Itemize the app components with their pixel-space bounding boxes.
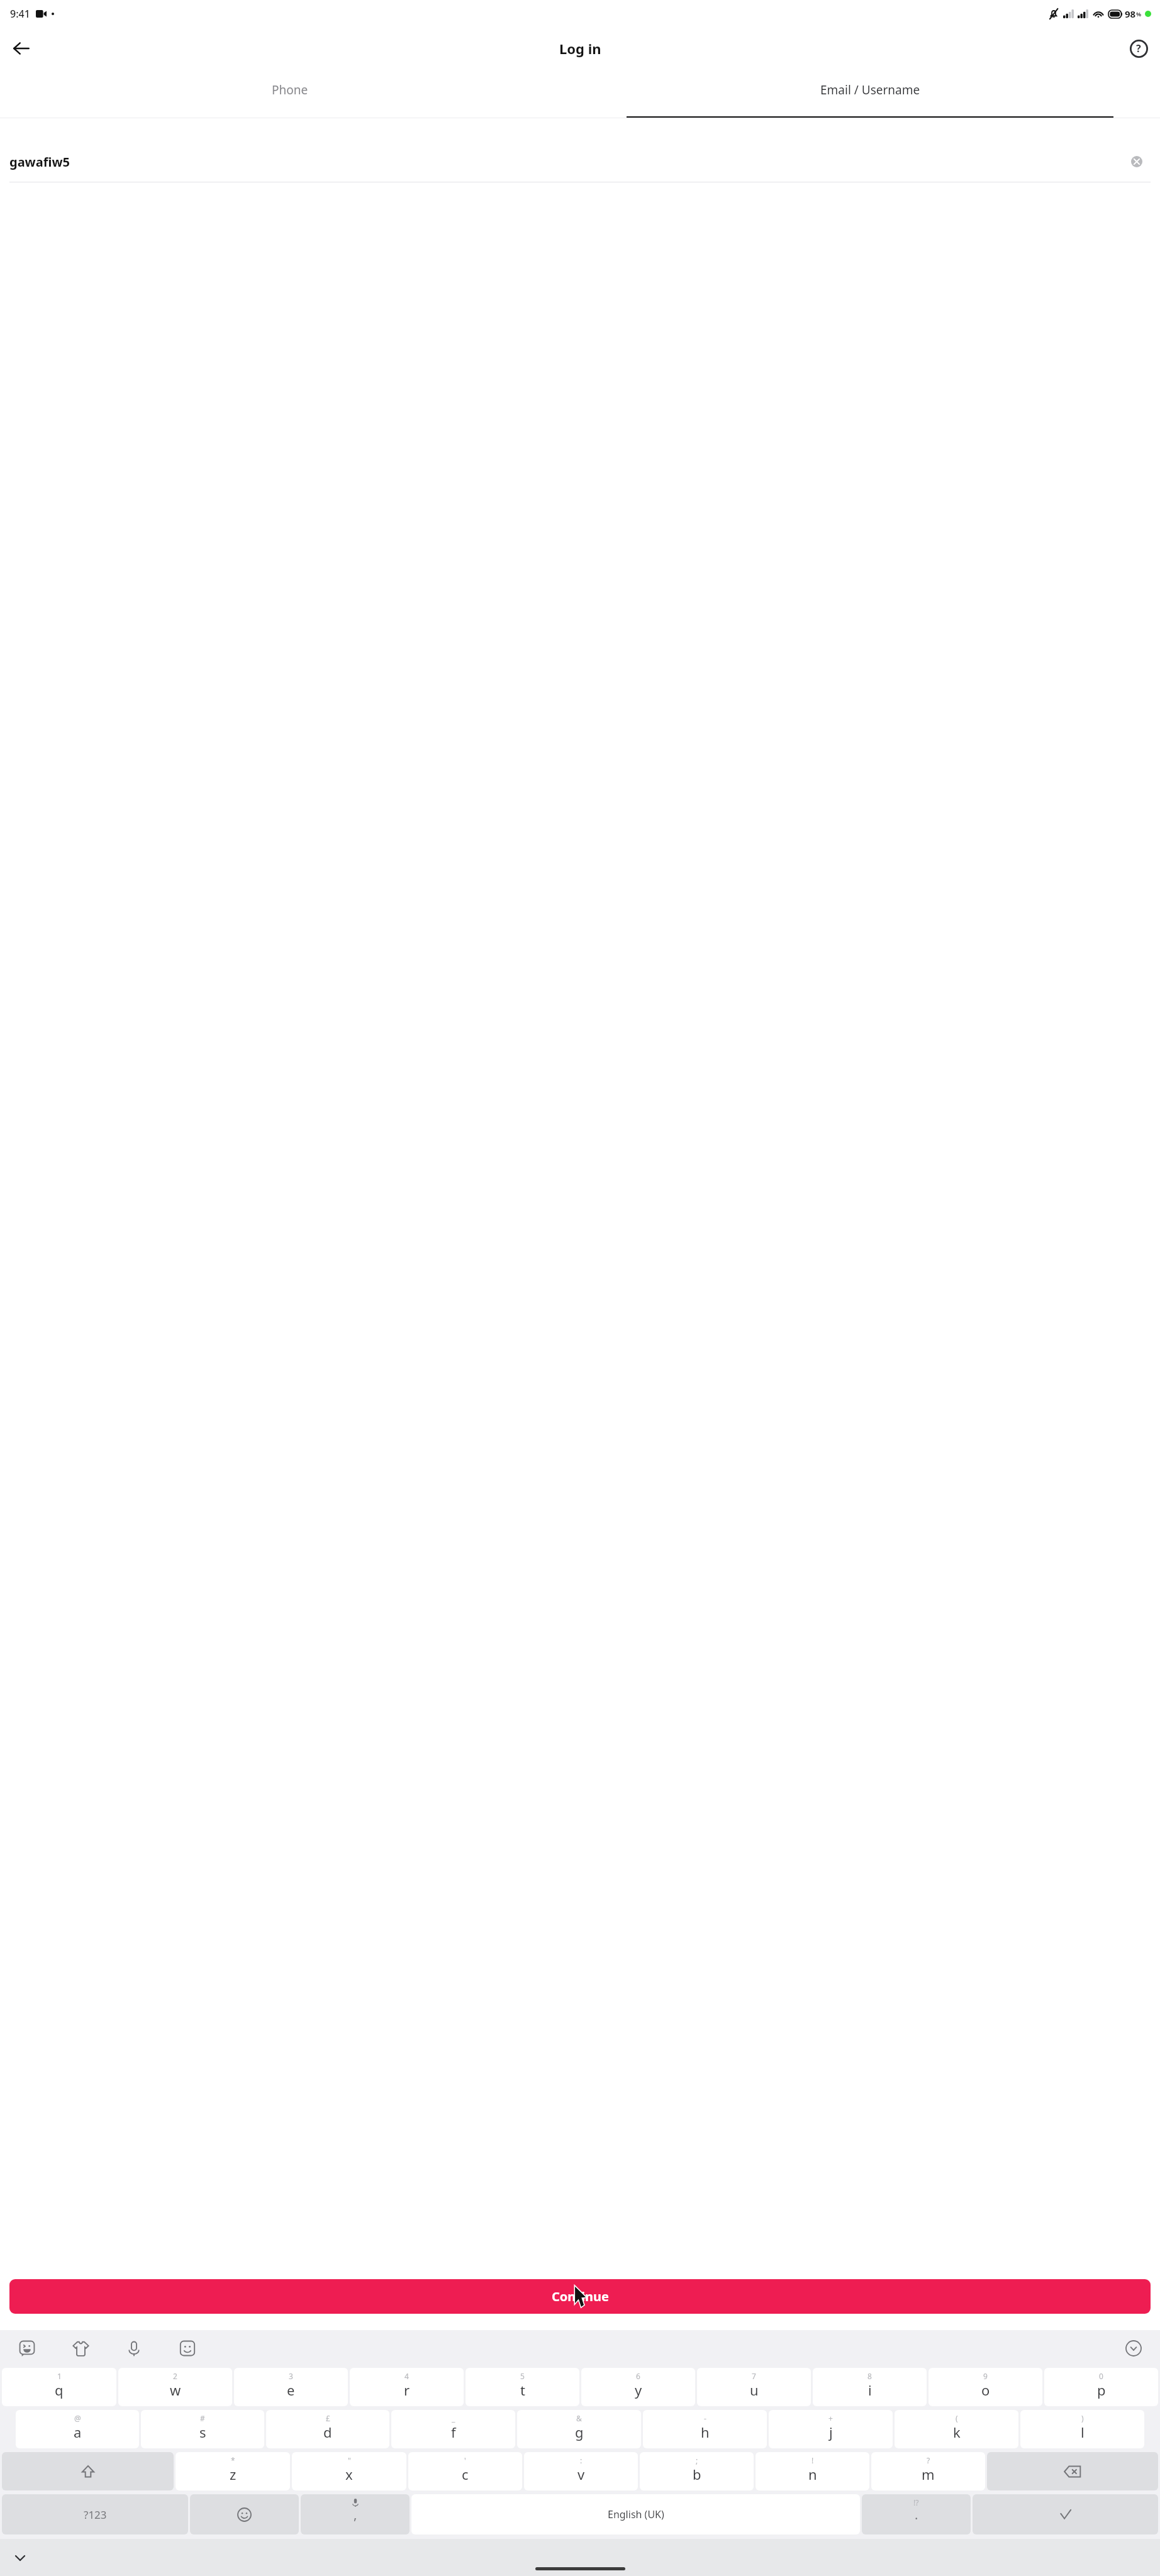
staticText: 5 xyxy=(520,2371,525,2381)
button[interactable]: Stickers xyxy=(13,2334,42,2363)
button[interactable]: Continue xyxy=(9,2279,1151,2314)
staticText: b xyxy=(693,2465,701,2484)
button[interactable]: p xyxy=(1044,2368,1158,2406)
staticText: % xyxy=(1136,10,1142,18)
staticText: ( xyxy=(956,2413,958,2423)
staticText: w xyxy=(170,2380,181,2399)
button[interactable]: w xyxy=(118,2368,232,2406)
staticText: ! xyxy=(811,2455,814,2465)
staticText: ) xyxy=(1081,2413,1084,2423)
staticText: c xyxy=(462,2465,469,2484)
button[interactable]: Email / Username xyxy=(580,69,1160,118)
button[interactable]: Help xyxy=(1122,32,1155,65)
staticText: f xyxy=(451,2423,456,2441)
staticText: Email / Username xyxy=(820,82,920,98)
button[interactable]: m xyxy=(871,2452,985,2490)
staticText: t xyxy=(520,2380,525,2399)
staticText: English (UK) xyxy=(608,2507,664,2521)
button[interactable]: g xyxy=(517,2410,641,2448)
staticText: ? xyxy=(927,2455,930,2465)
button[interactable]: t xyxy=(466,2368,579,2406)
button[interactable]: q xyxy=(2,2368,116,2406)
staticText: ?123 xyxy=(84,2507,107,2522)
staticText: 98 xyxy=(1125,8,1136,20)
button[interactable]: v xyxy=(524,2452,638,2490)
staticText: j xyxy=(829,2423,833,2441)
staticText: 0 xyxy=(1099,2371,1103,2381)
button[interactable]: Shift xyxy=(2,2452,174,2490)
button[interactable]: c xyxy=(408,2452,522,2490)
button[interactable]: i xyxy=(813,2368,927,2406)
button[interactable]: b xyxy=(640,2452,754,2490)
button[interactable]: Emoji xyxy=(173,2334,202,2363)
staticText: e xyxy=(287,2380,295,2399)
button[interactable]: y xyxy=(581,2368,695,2406)
button[interactable]: Voice input xyxy=(120,2334,148,2363)
staticText: 2 xyxy=(173,2371,177,2381)
staticText: 7 xyxy=(752,2371,756,2381)
button[interactable]: u xyxy=(697,2368,811,2406)
button[interactable]: x xyxy=(292,2452,406,2490)
staticText: # xyxy=(200,2413,205,2423)
staticText: ' xyxy=(464,2455,466,2465)
button[interactable]: s xyxy=(141,2410,264,2448)
button[interactable]: Phone xyxy=(0,69,580,118)
button[interactable]: Hide keyboard xyxy=(5,2543,35,2573)
button[interactable]: a xyxy=(16,2410,139,2448)
staticText: Continue xyxy=(552,2288,609,2305)
staticText: Phone xyxy=(272,82,308,98)
staticText: d xyxy=(323,2423,332,2441)
staticText: 9:41 xyxy=(10,7,30,21)
staticText: k xyxy=(953,2423,961,2441)
staticText: o xyxy=(981,2380,990,2399)
staticText: y xyxy=(635,2380,642,2399)
staticText: h xyxy=(701,2423,710,2441)
button[interactable]: d xyxy=(266,2410,389,2448)
staticText: a xyxy=(74,2423,82,2441)
button[interactable]: Themes xyxy=(66,2334,95,2363)
button[interactable]: n xyxy=(756,2452,869,2490)
button[interactable]: l xyxy=(1020,2410,1144,2448)
staticText: r xyxy=(404,2380,410,2399)
button[interactable]: Collapse toolbar xyxy=(1120,2334,1147,2362)
staticText: & xyxy=(576,2413,582,2423)
button[interactable]: f xyxy=(391,2410,515,2448)
button[interactable]: . xyxy=(862,2494,971,2534)
button[interactable]: Enter xyxy=(973,2494,1158,2534)
staticText: 3 xyxy=(289,2371,293,2381)
button[interactable]: ?123 xyxy=(2,2494,188,2534)
staticText: ? xyxy=(1136,42,1141,55)
staticText: _ xyxy=(452,2413,455,2423)
staticText: : xyxy=(580,2455,583,2465)
button[interactable]: Clear text xyxy=(1123,148,1151,175)
staticText: m xyxy=(922,2465,935,2484)
button[interactable]: Emoji xyxy=(190,2494,299,2534)
button[interactable]: h xyxy=(643,2410,767,2448)
staticText: ; xyxy=(696,2455,698,2465)
staticText: i xyxy=(868,2380,872,2399)
staticText: " xyxy=(348,2455,351,2465)
staticText: v xyxy=(577,2465,585,2484)
staticText: £ xyxy=(326,2413,330,2423)
staticText: 6 xyxy=(636,2371,640,2381)
staticText: 4 xyxy=(404,2371,409,2381)
staticText: 8 xyxy=(867,2371,872,2381)
staticText: @ xyxy=(74,2413,81,2423)
button[interactable]: k xyxy=(895,2410,1018,2448)
button[interactable]: j xyxy=(769,2410,893,2448)
button[interactable]: Backspace xyxy=(987,2452,1158,2490)
button[interactable]: e xyxy=(234,2368,348,2406)
button[interactable]: Back xyxy=(4,31,39,66)
button[interactable]: English (UK) xyxy=(411,2494,860,2534)
staticText: , xyxy=(354,2506,357,2523)
button[interactable]: r xyxy=(350,2368,464,2406)
staticText: gawafiw5 xyxy=(9,153,70,170)
staticText: . xyxy=(915,2506,918,2523)
staticText: n xyxy=(808,2465,817,2484)
button[interactable]: z xyxy=(176,2452,290,2490)
button[interactable]: o xyxy=(929,2368,1042,2406)
staticText: !? xyxy=(913,2497,919,2507)
button[interactable]: , xyxy=(301,2494,410,2534)
staticText: Log in xyxy=(559,39,601,58)
staticText: 1 xyxy=(57,2371,62,2381)
